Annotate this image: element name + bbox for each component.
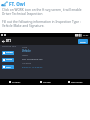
staticText: CAMERA — [12, 81, 21, 84]
staticText: Vehicle — [22, 49, 31, 53]
staticText: DTI — [6, 39, 11, 43]
button[interactable]: IMAGES — [30, 79, 60, 85]
staticText: SIGN — [6, 66, 11, 69]
staticText: CAMERA — [6, 51, 13, 55]
staticText: Selected Tool — [2, 45, 17, 48]
staticText: Location — [22, 62, 32, 65]
staticText: GALLERY — [6, 58, 13, 62]
button[interactable]: CAMERA — [0, 79, 30, 85]
staticText: SIGNATURE — [71, 81, 83, 84]
button[interactable]: SIGN — [2, 65, 14, 69]
staticText: Fill out the following information in In… — [2, 20, 82, 28]
staticText: 53.54 N 113.49 W — [22, 65, 43, 68]
staticText: Type — [22, 46, 28, 49]
button[interactable]: Back — [1, 39, 6, 44]
staticText: DTI Corrected Inc. — [22, 57, 44, 60]
staticText: Click on WORK icon on the ft svg screen,… — [2, 8, 82, 16]
button[interactable]: GALLERY — [2, 58, 14, 62]
button[interactable]: SIGNATURE — [60, 79, 90, 85]
staticText: ▇▇ ▌▌ 11:41 — [75, 34, 89, 37]
staticText: Make — [22, 54, 28, 57]
staticText: SAVE — [80, 40, 86, 43]
button[interactable]: CAMERA — [2, 51, 14, 55]
button[interactable]: SAVE — [78, 39, 88, 44]
staticText: IMAGES — [43, 81, 51, 84]
staticText: FT. Owl — [9, 1, 25, 7]
